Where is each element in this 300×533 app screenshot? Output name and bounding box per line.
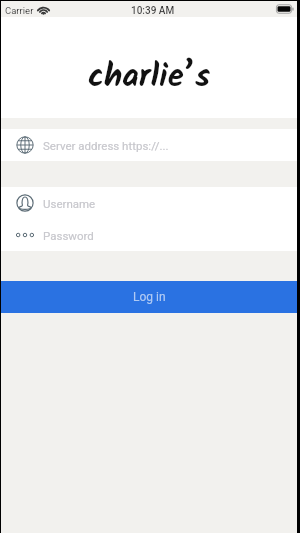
button[interactable]: Log in bbox=[1, 281, 297, 313]
other: Password bbox=[16, 226, 34, 244]
other: Username bbox=[16, 194, 34, 212]
other: Wi-Fi bbox=[38, 7, 49, 15]
button[interactable]: Server address bbox=[1, 129, 297, 161]
other: Server address bbox=[16, 136, 34, 154]
staticText: Password bbox=[43, 229, 94, 242]
staticText: charlie’s bbox=[88, 51, 211, 103]
staticText: Log in bbox=[133, 290, 166, 304]
button[interactable]: Username bbox=[1, 187, 297, 219]
button[interactable]: Password bbox=[1, 219, 297, 251]
staticText: 10:39 AM bbox=[131, 5, 175, 17]
other: Battery bbox=[276, 4, 294, 14]
staticText: Server address https://... bbox=[43, 139, 169, 152]
staticText: Username bbox=[43, 197, 96, 210]
staticText: Carrier bbox=[5, 5, 34, 16]
